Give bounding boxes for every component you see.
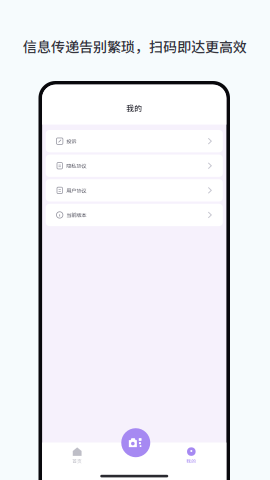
button[interactable]: 投诉 — [46, 130, 223, 152]
staticText: 投诉 — [66, 137, 76, 145]
staticText: 我的 — [186, 457, 196, 464]
staticText: 隐私协议 — [66, 162, 86, 170]
staticText: 用户协议 — [66, 186, 86, 194]
button[interactable]: Scan QR code — [121, 428, 150, 457]
staticText: 首页 — [72, 457, 82, 464]
button[interactable]: 隐私协议 — [46, 155, 223, 177]
button[interactable]: 当前版本 — [46, 204, 223, 226]
staticText: 当前版本 — [66, 211, 86, 219]
staticText: 我的 — [126, 102, 142, 114]
staticText: 信息传递告别繁琐，扫码即达更高效 — [23, 36, 247, 56]
button[interactable]: 首页 — [42, 442, 112, 464]
button[interactable]: 我的 — [156, 442, 226, 464]
button[interactable]: 用户协议 — [46, 179, 223, 201]
